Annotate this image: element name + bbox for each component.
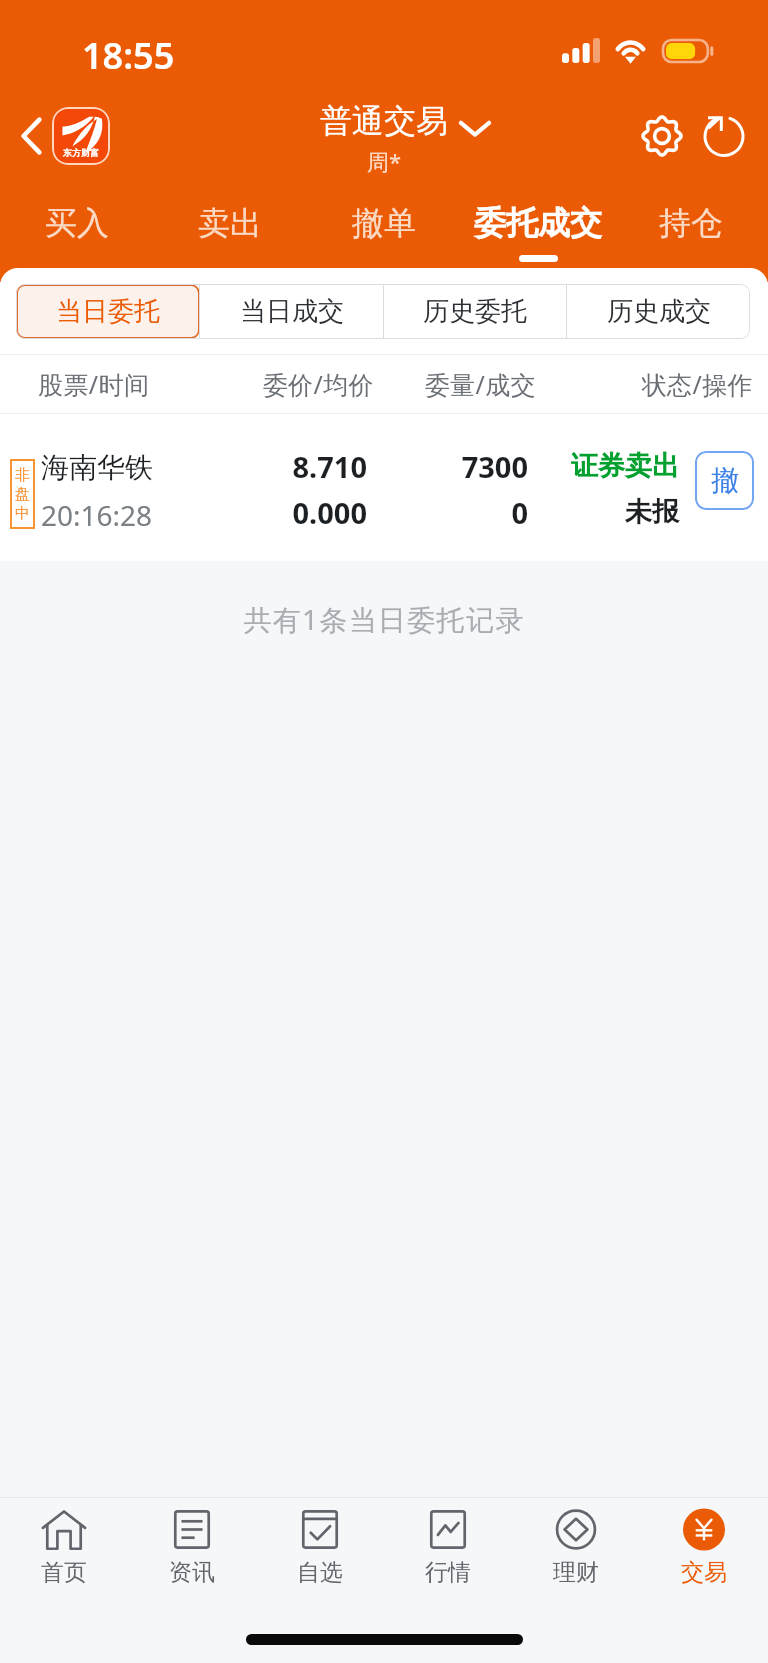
staticText: 交易 (681, 1558, 727, 1587)
staticText: 当日委托 (56, 295, 160, 328)
button[interactable]: 资讯 (128, 1498, 256, 1598)
staticText: 自选 (297, 1558, 343, 1587)
button[interactable]: 非 (0, 414, 768, 561)
button[interactable]: Back (5, 110, 57, 162)
staticText: 0.000 (0, 493, 367, 532)
button[interactable] (16, 284, 200, 339)
staticText: 资讯 (169, 1558, 215, 1587)
staticText: 行情 (425, 1558, 471, 1587)
staticText: 未报 (0, 495, 679, 529)
staticText: 盘 (15, 485, 30, 504)
staticText: 状态/操作 (0, 367, 753, 401)
button[interactable]: 自选 (256, 1498, 384, 1598)
button[interactable]: 历史委托 (383, 284, 567, 339)
staticText: 周* (0, 146, 768, 176)
button[interactable]: Refresh (698, 110, 750, 162)
button[interactable]: 撤 (695, 451, 754, 510)
button[interactable]: 持仓 (645, 196, 737, 268)
button[interactable]: 撤单 (338, 196, 430, 268)
staticText: 8.710 (0, 447, 367, 486)
button[interactable]: 历史成交 (567, 284, 750, 339)
staticText: 持仓 (659, 203, 723, 243)
staticText: 委量/成交 (0, 367, 536, 401)
staticText: 当日成交 (240, 295, 344, 328)
staticText: 撤 (711, 463, 739, 498)
staticText: 撤单 (352, 203, 416, 243)
staticText: 海南华铁 (41, 450, 153, 485)
button[interactable]: 卖出 (184, 196, 276, 268)
button[interactable]: 行情 (384, 1498, 512, 1598)
button[interactable]: 首页 (0, 1498, 128, 1598)
button[interactable]: Settings (636, 110, 688, 162)
staticText: 7300 (0, 447, 528, 486)
button[interactable]: 买入 (31, 196, 123, 268)
staticText: 首页 (41, 1558, 87, 1587)
staticText: 买入 (45, 203, 109, 243)
staticText: 东方财富 (63, 147, 99, 158)
staticText: 20:16:28 (41, 496, 153, 534)
staticText: 股票/时间 (38, 367, 150, 401)
staticText: 理财 (553, 1558, 599, 1587)
staticText: 中 (15, 504, 30, 523)
staticText: 委价/均价 (0, 367, 374, 401)
staticText: 历史委托 (423, 295, 527, 328)
staticText: 非 (15, 466, 30, 485)
staticText: 历史成交 (607, 295, 711, 328)
staticText: 0 (0, 493, 528, 532)
staticText: 共有1条当日委托记录 (0, 600, 768, 638)
staticText: 18:55 (82, 31, 175, 80)
button[interactable]: 当日成交 (200, 284, 384, 339)
button[interactable]: 理财 (512, 1498, 640, 1598)
staticText: 证券卖出 (0, 449, 679, 483)
button[interactable]: East Money (52, 107, 110, 165)
button[interactable]: 交易 (640, 1498, 768, 1598)
staticText: 普通交易 (0, 101, 768, 141)
staticText: 委托成交 (474, 203, 602, 243)
button[interactable]: 委托成交 (463, 196, 613, 268)
staticText: 卖出 (198, 203, 262, 243)
